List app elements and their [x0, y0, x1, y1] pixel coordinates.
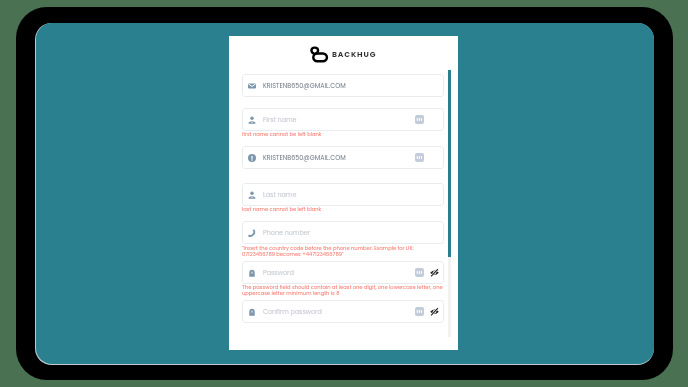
staticText: Confirm password	[263, 307, 415, 316]
button[interactable]: Autofill	[415, 268, 424, 277]
staticText: first name cannot be left blank	[242, 131, 443, 138]
staticText: KRISTENB650@GMAIL.COM	[263, 81, 415, 90]
button[interactable]: Password	[242, 261, 444, 284]
button[interactable]: Show password	[430, 268, 439, 277]
button[interactable]: KRISTENB650@GMAIL.COM	[242, 146, 444, 169]
staticText: KRISTENB650@GMAIL.COM	[263, 153, 415, 162]
button[interactable]: First name	[242, 108, 444, 131]
button[interactable]: Show password	[430, 307, 439, 316]
button[interactable]: KRISTENB650@GMAIL.COM	[242, 74, 444, 97]
staticText: First name	[263, 115, 415, 124]
button[interactable]: Autofill	[415, 307, 424, 316]
staticText: Last name	[263, 190, 415, 199]
button[interactable]: Last name	[242, 183, 444, 206]
button[interactable]: Autofill	[415, 115, 424, 124]
staticText: Password	[263, 268, 415, 277]
staticText: last name cannot be left blank	[242, 206, 443, 213]
button[interactable]: Phone number	[242, 221, 444, 244]
staticText: "Insert the country code before the phon…	[242, 245, 443, 258]
button[interactable]: Autofill	[415, 153, 424, 162]
staticText: The password field should contain at lea…	[242, 284, 443, 297]
staticText: BACKHUG	[332, 49, 377, 60]
button[interactable]: Confirm password	[242, 300, 444, 323]
staticText: Phone number	[263, 228, 415, 237]
